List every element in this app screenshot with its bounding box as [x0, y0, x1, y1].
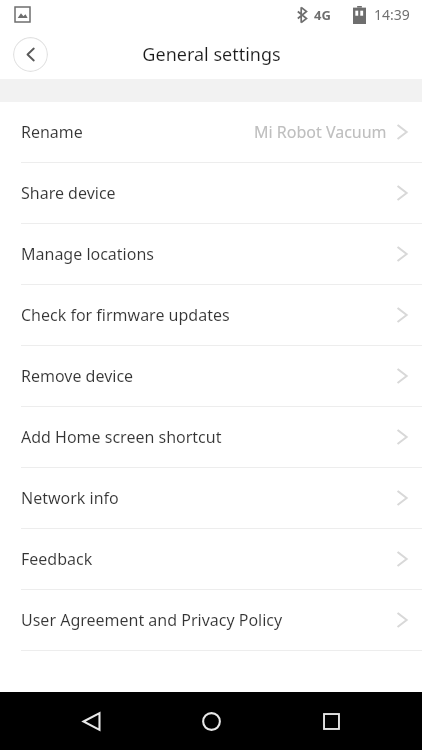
- button[interactable]: Remove device: [0, 346, 422, 406]
- button[interactable]: Share device: [0, 163, 422, 223]
- button[interactable]: Add Home screen shortcut: [0, 407, 422, 467]
- staticText: Mi Robot Vacuum: [254, 121, 387, 143]
- button[interactable]: Network info: [0, 468, 422, 528]
- staticText: Remove device: [21, 365, 134, 387]
- staticText: Feedback: [21, 548, 93, 570]
- button[interactable]: Back: [13, 37, 48, 72]
- button[interactable]: User Agreement and Privacy Policy: [0, 590, 422, 650]
- staticText: Rename: [21, 121, 83, 143]
- button[interactable]: Recent apps: [302, 692, 360, 750]
- staticText: General settings: [142, 42, 281, 67]
- staticText: Manage locations: [21, 243, 154, 265]
- button[interactable]: Feedback: [0, 529, 422, 589]
- staticText: Add Home screen shortcut: [21, 426, 222, 448]
- staticText: Share device: [21, 182, 116, 204]
- staticText: 14:39: [374, 5, 410, 24]
- staticText: User Agreement and Privacy Policy: [21, 609, 283, 631]
- staticText: Network info: [21, 487, 119, 509]
- button[interactable]: Back: [62, 692, 120, 750]
- staticText: 4G: [314, 6, 331, 24]
- button[interactable]: Manage locations: [0, 224, 422, 284]
- button[interactable]: Check for firmware updates: [0, 285, 422, 345]
- staticText: Check for firmware updates: [21, 304, 230, 326]
- button[interactable]: Rename: [0, 102, 422, 162]
- button[interactable]: Home: [182, 692, 240, 750]
